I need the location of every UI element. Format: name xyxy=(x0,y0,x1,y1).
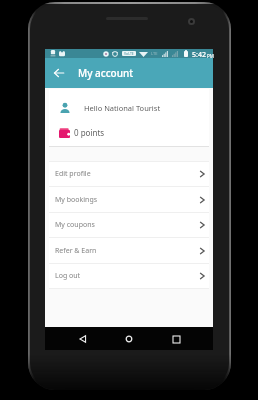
staticText: My bookings xyxy=(55,195,98,205)
staticText: PM xyxy=(207,53,214,59)
staticText: Log out xyxy=(55,271,81,281)
staticText: Hello National Tourist xyxy=(84,103,161,113)
button[interactable]: Back xyxy=(49,63,69,83)
button[interactable]: Recent apps xyxy=(167,330,185,348)
staticText: 0 points xyxy=(74,127,105,138)
staticText: Refer & Earn xyxy=(55,246,97,256)
button[interactable]: Refer & Earn xyxy=(49,238,209,263)
button[interactable]: My coupons xyxy=(49,213,209,237)
button[interactable]: Home xyxy=(120,330,138,348)
button[interactable]: Log out xyxy=(49,264,209,288)
staticText: Edit profile xyxy=(55,169,91,179)
staticText: 5:42 xyxy=(192,50,206,59)
staticText: My account xyxy=(78,66,134,80)
button[interactable]: Back xyxy=(74,330,92,348)
button[interactable]: Edit profile xyxy=(49,162,209,186)
button[interactable]: My bookings xyxy=(49,187,209,212)
staticText: LTE xyxy=(151,51,158,56)
staticText: VoLTE xyxy=(124,51,134,56)
staticText: My coupons xyxy=(55,220,95,230)
